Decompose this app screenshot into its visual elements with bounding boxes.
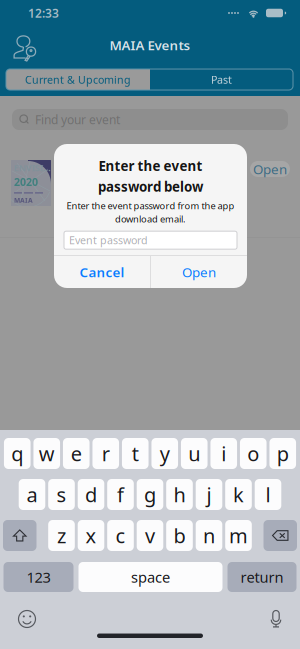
- button[interactable]: o: [240, 438, 266, 469]
- staticText: d: [85, 481, 97, 508]
- staticText: g: [144, 481, 156, 508]
- staticText: a: [26, 481, 37, 508]
- staticText: r: [102, 440, 110, 467]
- button[interactable]: h: [166, 479, 193, 510]
- button[interactable]: Emoji: [14, 606, 40, 632]
- staticText: h: [173, 481, 185, 508]
- button[interactable]: Account: [10, 26, 40, 64]
- staticText: u: [188, 440, 200, 467]
- button[interactable]: w: [33, 438, 60, 469]
- staticText: download email.: [115, 213, 186, 225]
- button[interactable]: Dictate: [263, 606, 289, 632]
- button[interactable]: q: [4, 438, 30, 469]
- button[interactable]: b: [166, 520, 193, 551]
- staticText: MAIA Events: [109, 36, 190, 54]
- staticText: 2020: [14, 175, 38, 189]
- button[interactable]: r: [92, 438, 119, 469]
- button[interactable]: c: [107, 520, 134, 551]
- button[interactable]: l: [255, 479, 281, 510]
- button[interactable]: a: [19, 479, 45, 510]
- staticText: space: [131, 567, 170, 587]
- staticText: return: [240, 567, 283, 587]
- button[interactable]: i: [210, 438, 237, 469]
- staticText: p: [277, 440, 289, 467]
- button[interactable]: Current & Upcoming: [6, 69, 150, 90]
- staticText: n: [203, 522, 215, 549]
- button[interactable]: n: [196, 520, 222, 551]
- button[interactable]: k: [225, 479, 252, 510]
- staticText: f: [117, 481, 124, 508]
- button[interactable]: u: [181, 438, 207, 469]
- staticText: t: [132, 440, 139, 467]
- staticText: c: [115, 522, 125, 549]
- staticText: o: [247, 440, 259, 467]
- staticText: password below: [98, 178, 203, 195]
- staticText: Cancel: [80, 263, 125, 281]
- staticText: MAIA: [14, 196, 33, 205]
- button[interactable]: y: [151, 438, 178, 469]
- button[interactable]: return: [227, 562, 296, 592]
- staticText: 12:33: [28, 5, 59, 21]
- button[interactable]: e: [63, 438, 89, 469]
- staticText: j: [206, 481, 211, 508]
- button[interactable]: d: [78, 479, 104, 510]
- staticText: i: [221, 440, 226, 467]
- staticText: b: [173, 522, 185, 549]
- staticText: ENVISION: [14, 161, 51, 174]
- staticText: 123: [26, 567, 50, 587]
- staticText: w: [39, 440, 55, 467]
- button[interactable]: m: [225, 520, 252, 551]
- staticText: k: [233, 481, 244, 508]
- button[interactable]: Shift: [3, 520, 36, 551]
- button[interactable]: g: [137, 479, 163, 510]
- button[interactable]: Delete: [263, 520, 297, 551]
- button[interactable]: v: [137, 520, 163, 551]
- button[interactable]: space: [78, 562, 222, 592]
- staticText: Past: [211, 72, 232, 87]
- button[interactable]: z: [48, 520, 75, 551]
- staticText: m: [229, 522, 248, 549]
- staticText: Current & Upcoming: [25, 72, 131, 87]
- button[interactable]: Open: [250, 161, 290, 177]
- staticText: x: [85, 522, 96, 549]
- staticText: Find your event: [35, 111, 120, 127]
- button[interactable]: t: [122, 438, 148, 469]
- staticText: v: [145, 522, 155, 549]
- staticText: Event password: [69, 233, 148, 247]
- staticText: q: [11, 440, 23, 467]
- button[interactable]: s: [48, 479, 75, 510]
- staticText: e: [71, 440, 82, 467]
- button[interactable]: j: [196, 479, 222, 510]
- button[interactable]: p: [269, 438, 296, 469]
- button[interactable]: Cancel: [54, 256, 150, 288]
- button[interactable]: Past: [150, 69, 293, 90]
- staticText: Open: [182, 263, 216, 281]
- staticText: l: [265, 481, 270, 508]
- staticText: Enter the event password from the app: [66, 199, 234, 212]
- button[interactable]: Open: [151, 256, 247, 288]
- button[interactable]: f: [107, 479, 134, 510]
- staticText: Enter the event: [98, 157, 202, 175]
- staticText: y: [160, 440, 170, 467]
- staticText: z: [57, 522, 66, 549]
- staticText: Open: [253, 160, 287, 178]
- staticText: s: [56, 481, 66, 508]
- button[interactable]: x: [78, 520, 104, 551]
- button[interactable]: 123: [3, 562, 73, 592]
